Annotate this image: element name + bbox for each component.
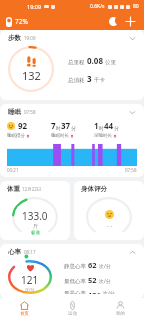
staticText: 我的 — [116, 311, 125, 317]
staticText: 心率 — [8, 248, 21, 256]
button[interactable]: 睡眠 — [0, 104, 144, 120]
staticText: 睡眠时长 — [51, 133, 69, 139]
staticText: 时 — [99, 125, 104, 131]
staticText: 时 — [56, 125, 61, 131]
staticText: 最低心率 — [64, 278, 86, 285]
staticText: 总里程 — [68, 59, 85, 66]
staticText: 次/分 — [103, 290, 115, 294]
button[interactable]: 首页 — [0, 298, 48, 320]
staticText: 步数 — [8, 34, 21, 42]
staticText: 分 — [114, 125, 119, 131]
staticText: 身体评分 — [81, 185, 107, 193]
staticText: 运动 — [68, 311, 77, 317]
button[interactable]: 步数 — [0, 30, 144, 100]
staticText: 44 — [104, 120, 114, 131]
staticText: 最高心率 — [64, 290, 86, 294]
staticText: 07:58 — [24, 109, 36, 115]
staticText: 121 — [88, 290, 101, 294]
staticText: 72% — [15, 17, 28, 26]
staticText: 首页 — [20, 311, 29, 317]
button[interactable]: 睡眠 — [0, 104, 144, 177]
staticText: 80 — [133, 3, 139, 10]
staticText: 132 — [22, 68, 41, 83]
staticText: 92 — [18, 120, 28, 131]
staticText: 总消耗 — [68, 77, 85, 84]
staticText: 千卡 — [94, 77, 105, 84]
staticText: 次/分 — [99, 263, 111, 270]
staticText: 37 — [61, 120, 71, 131]
staticText: 7 — [51, 120, 56, 131]
staticText: 睡眠得分 — [7, 133, 25, 139]
button[interactable]: Add — [123, 14, 138, 29]
staticText: 体重 — [7, 185, 20, 193]
staticText: 静息心率 — [64, 263, 86, 270]
button[interactable]: 运动 — [48, 298, 96, 320]
staticText: 睡眠 — [8, 108, 21, 116]
staticText: 12月22日 — [22, 186, 42, 192]
staticText: 次/分 — [25, 287, 35, 292]
staticText: 121 — [21, 273, 39, 287]
button[interactable]: 体重 — [0, 181, 70, 240]
button[interactable]: Sleep mode — [106, 14, 121, 29]
button[interactable]: 步数 — [0, 30, 144, 46]
staticText: 斤 — [33, 223, 38, 229]
staticText: 08:17 — [24, 249, 36, 255]
staticText: 133.0 — [22, 209, 48, 223]
staticText: 19:09 — [24, 35, 36, 41]
staticText: 标准 — [31, 230, 40, 236]
staticText: 62 — [88, 260, 97, 270]
staticText: 3 — [87, 73, 92, 84]
button[interactable]: 我的 — [96, 298, 144, 320]
staticText: 1 — [94, 120, 99, 131]
staticText: - - — [107, 222, 113, 230]
button[interactable]: 心率 — [0, 244, 144, 298]
button[interactable]: 心率 — [0, 244, 144, 260]
staticText: 分 — [71, 125, 76, 131]
staticText: 19:09 — [27, 3, 42, 10]
staticText: 00:21 — [7, 167, 19, 173]
staticText: 深睡时长 — [94, 133, 112, 139]
staticText: 0.6K/s — [90, 3, 105, 10]
button[interactable]: 身体评分 — [74, 181, 144, 240]
staticText: 0.08 — [87, 55, 103, 66]
staticText: 次/分 — [99, 278, 111, 285]
staticText: 公里 — [105, 59, 116, 66]
staticText: 52 — [88, 275, 97, 285]
staticText: 07:58 — [125, 167, 137, 173]
